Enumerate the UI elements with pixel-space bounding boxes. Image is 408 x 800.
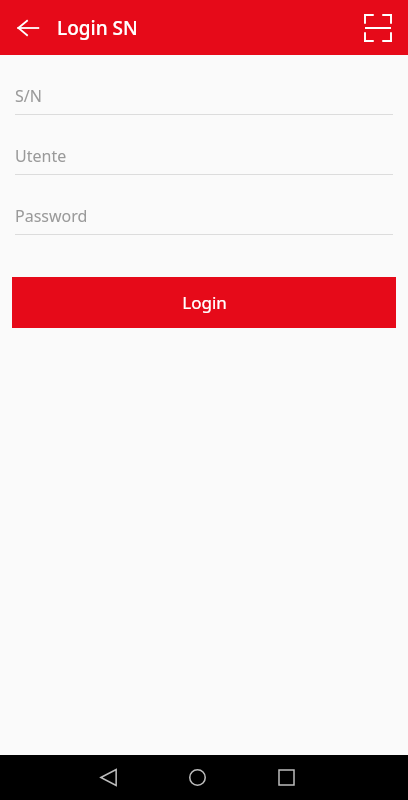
- staticText: Login: [182, 291, 227, 314]
- button[interactable]: S/N: [15, 85, 393, 115]
- staticText: Utente: [15, 145, 67, 167]
- button[interactable]: Back: [84, 755, 132, 800]
- button[interactable]: Password: [15, 205, 393, 235]
- button[interactable]: Back: [8, 8, 48, 48]
- button[interactable]: Scan barcode: [356, 6, 400, 50]
- button[interactable]: Recent apps: [262, 755, 310, 800]
- button[interactable]: Home: [173, 755, 221, 800]
- button[interactable]: Utente: [15, 145, 393, 175]
- staticText: Login SN: [57, 15, 138, 41]
- staticText: Password: [15, 205, 88, 227]
- staticText: S/N: [15, 85, 42, 107]
- button[interactable]: Login: [12, 277, 396, 328]
